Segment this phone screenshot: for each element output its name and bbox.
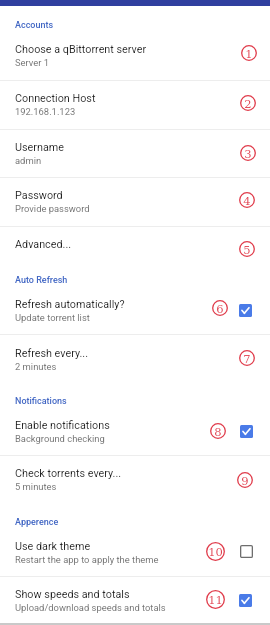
staticText: Choose a qBittorrent server [15, 43, 147, 56]
staticText: Background checking [15, 433, 105, 444]
staticText: admin [15, 155, 42, 166]
staticText: 5 [243, 243, 251, 256]
staticText: 8 [214, 425, 222, 438]
staticText: Connection Host [15, 92, 96, 105]
button[interactable]: Choose a qBittorrent server [0, 31, 270, 80]
button[interactable]: Show speeds and totals [0, 576, 270, 625]
staticText: 3 [244, 147, 252, 160]
staticText: 11 [208, 593, 223, 606]
button[interactable]: Show speeds and totals toggle [239, 594, 252, 607]
staticText: Use dark theme [15, 540, 91, 553]
button[interactable]: Check torrents every... [0, 455, 270, 504]
staticText: Show speeds and totals [15, 588, 130, 601]
staticText: 9 [241, 474, 249, 487]
button[interactable]: Enable notifications toggle [240, 425, 253, 438]
button[interactable]: Password [0, 177, 270, 226]
staticText: 5 minutes [15, 481, 57, 492]
staticText: 2 minutes [15, 361, 57, 372]
staticText: 10 [208, 545, 223, 558]
button[interactable]: Use dark theme [0, 528, 270, 577]
staticText: Provide password [15, 203, 90, 214]
staticText: 2 [244, 97, 252, 110]
staticText: Notifications [15, 396, 67, 407]
staticText: Update torrent list [15, 312, 90, 323]
button[interactable]: Use dark theme toggle [240, 545, 253, 558]
button[interactable]: Refresh automatically toggle [239, 304, 252, 317]
staticText: Accounts [15, 20, 54, 31]
staticText: Apperence [15, 517, 59, 528]
staticText: Password [15, 189, 63, 202]
staticText: Username [15, 141, 64, 154]
staticText: 6 [216, 302, 224, 315]
button[interactable]: Refresh every... [0, 335, 270, 384]
button[interactable]: Advanced... [0, 226, 270, 261]
staticText: Server 1 [15, 57, 50, 68]
button[interactable]: Refresh automatically? [0, 286, 270, 335]
staticText: 192.168.1.123 [15, 106, 76, 117]
staticText: Upload/download speeds and totals [15, 602, 166, 613]
staticText: Refresh automatically? [15, 298, 125, 311]
staticText: 4 [243, 194, 251, 207]
button[interactable]: Enable notifications [0, 407, 270, 456]
staticText: Enable notifications [15, 419, 110, 432]
button[interactable]: Connection Host [0, 80, 270, 129]
staticText: Advanced... [15, 238, 72, 251]
staticText: Check torrents every... [15, 467, 122, 480]
staticText: Auto Refresh [15, 275, 68, 286]
staticText: Refresh every... [15, 347, 88, 360]
staticText: Restart the app to apply the theme [15, 554, 159, 565]
button[interactable]: Username [0, 129, 270, 178]
staticText: 1 [245, 47, 253, 60]
staticText: 7 [243, 352, 251, 365]
